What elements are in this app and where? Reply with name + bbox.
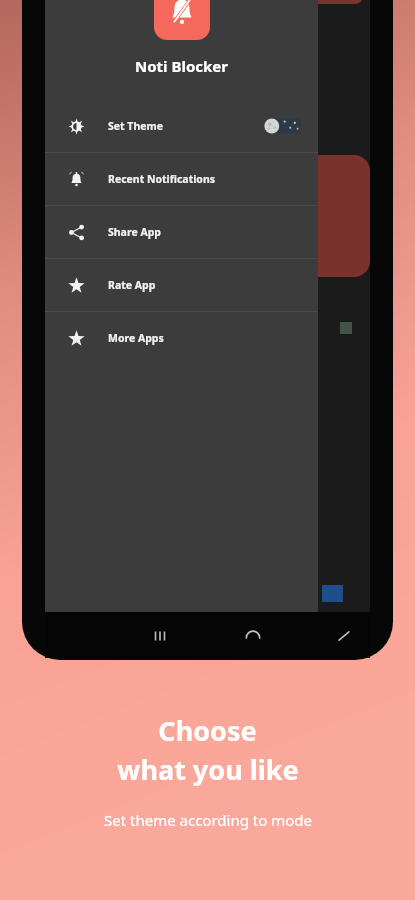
staticText: what you like xyxy=(117,751,299,788)
button[interactable]: Recent Notifications xyxy=(45,153,318,205)
button[interactable]: Back xyxy=(324,616,364,656)
staticText: Set theme according to mode xyxy=(104,810,312,830)
button[interactable]: Share App xyxy=(45,206,318,258)
button[interactable]: Rate App xyxy=(45,259,318,311)
button[interactable]: Recents xyxy=(140,616,180,656)
staticText: Rate App xyxy=(108,278,156,292)
button[interactable]: Set Theme xyxy=(45,100,318,152)
staticText: Choose xyxy=(158,712,257,749)
staticText: Recent Notifications xyxy=(108,172,216,186)
staticText: More Apps xyxy=(108,331,164,345)
button[interactable]: More Apps xyxy=(45,312,318,364)
staticText: Share App xyxy=(108,225,161,239)
button[interactable]: Toggle dark theme xyxy=(258,115,304,137)
staticText: Set Theme xyxy=(108,119,163,133)
button[interactable]: Home xyxy=(233,616,273,656)
staticText: Noti Blocker xyxy=(135,56,228,76)
